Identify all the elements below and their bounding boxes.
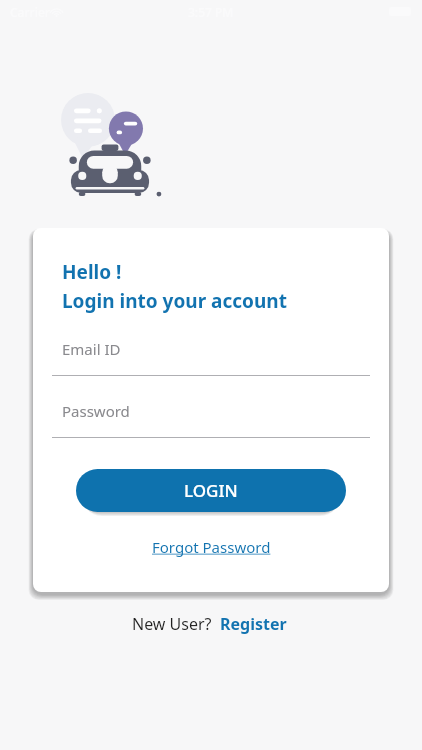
staticText: Login into your account <box>62 288 287 314</box>
button[interactable]: Register <box>217 610 290 638</box>
staticText: New User? <box>132 613 212 635</box>
staticText: Password <box>62 401 130 421</box>
other: Taxi chat illustration <box>55 90 165 205</box>
staticText: Register <box>220 613 287 635</box>
button[interactable]: Password <box>52 401 370 438</box>
staticText: Email ID <box>62 339 121 359</box>
staticText: Hello ! <box>62 259 122 285</box>
button[interactable]: Forgot Password <box>144 533 279 561</box>
staticText: Forgot Password <box>152 537 271 557</box>
button[interactable]: LOGIN <box>76 469 346 512</box>
staticText: LOGIN <box>184 479 238 502</box>
button[interactable]: Email ID <box>52 339 370 376</box>
